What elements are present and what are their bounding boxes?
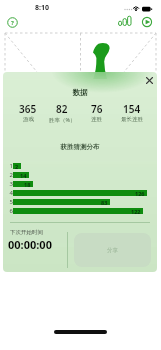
staticText: 8:10 <box>35 3 49 13</box>
staticText: 76 <box>91 102 103 116</box>
staticText: 6 <box>3 207 13 215</box>
staticText: 154 <box>123 102 141 116</box>
staticText: 游戏 <box>23 116 34 123</box>
staticText: 126 <box>135 190 145 196</box>
staticText: 下次开始时间 <box>10 229 43 236</box>
staticText: 获胜猜测分布 <box>3 143 157 151</box>
staticText: 14 <box>20 172 27 178</box>
staticText: 胜率（%） <box>49 116 76 124</box>
button[interactable] <box>117 15 132 30</box>
staticText: 数据 <box>3 88 157 97</box>
staticText: 最长连胜 <box>121 116 143 123</box>
staticText: 5 <box>3 198 13 206</box>
staticText: 365 <box>19 102 37 116</box>
button[interactable]: ? <box>7 17 18 28</box>
staticText: 连胜 <box>91 116 102 123</box>
staticText: ? <box>11 19 14 27</box>
staticText: 18 <box>24 181 31 187</box>
button[interactable] <box>143 74 156 87</box>
staticText: 82 <box>56 102 68 116</box>
staticText: 1 <box>3 162 13 170</box>
button[interactable] <box>142 17 153 28</box>
staticText: 2 <box>3 171 13 179</box>
staticText: 83 <box>101 199 108 205</box>
staticText: 3 <box>3 180 13 188</box>
staticText: 2 <box>15 163 19 169</box>
staticText: 4 <box>3 189 13 197</box>
staticText: 122 <box>131 208 141 214</box>
staticText: 00:00:00 <box>8 237 52 252</box>
staticText: 分享 <box>107 247 118 254</box>
